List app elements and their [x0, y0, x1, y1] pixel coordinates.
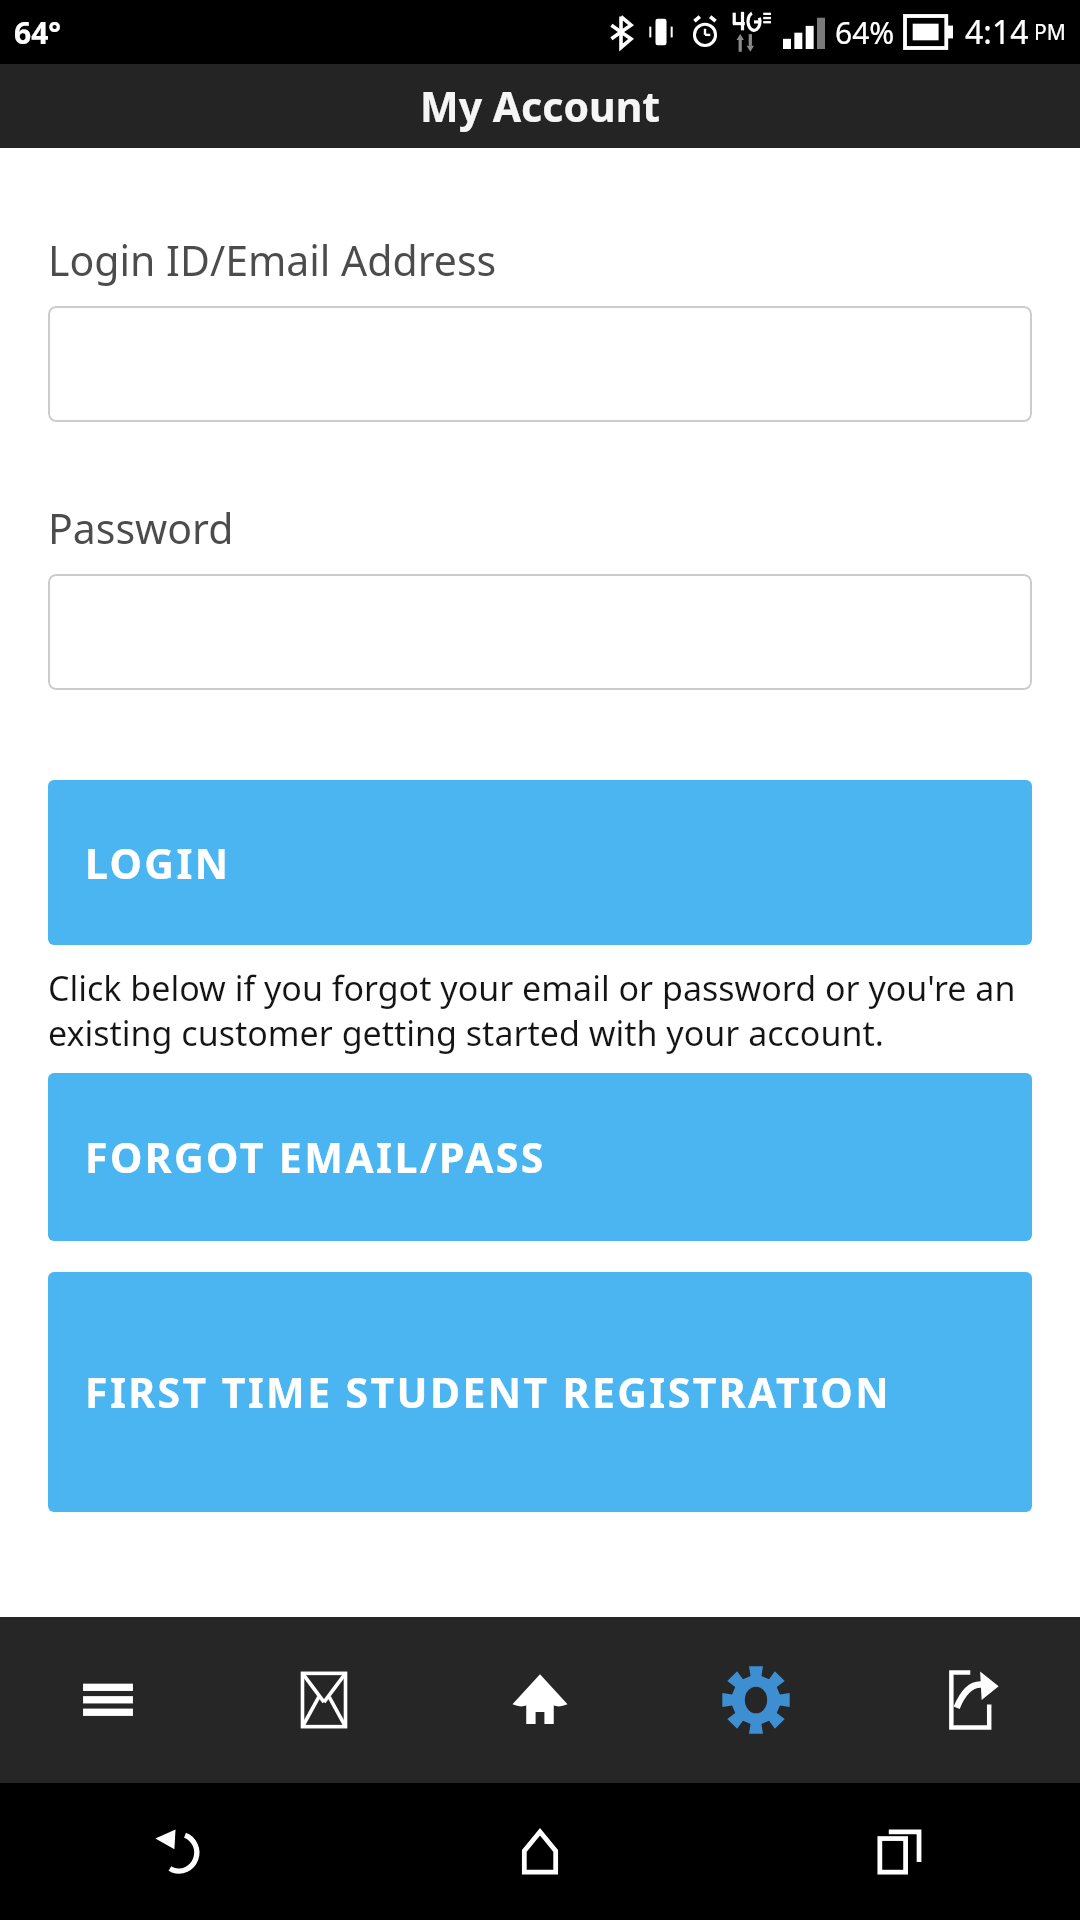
button[interactable]: [48, 574, 1032, 690]
button[interactable]: Home: [432, 1617, 648, 1783]
button[interactable]: FORGOT EMAIL/PASS: [48, 1073, 1032, 1241]
button[interactable]: [48, 306, 1032, 422]
button[interactable]: Settings: [648, 1617, 864, 1783]
button[interactable]: LOGIN: [48, 780, 1032, 945]
button[interactable]: Messages: [216, 1617, 432, 1783]
staticText: Password: [48, 500, 1032, 556]
staticText: FORGOT EMAIL/PASS: [85, 1129, 546, 1185]
staticText: Click below if you forgot your email or …: [48, 965, 1032, 1055]
button[interactable]: Recents: [720, 1783, 1080, 1920]
staticText: PM: [1034, 18, 1066, 47]
button[interactable]: Home: [360, 1783, 720, 1920]
button[interactable]: Share: [864, 1617, 1080, 1783]
staticText: LOGIN: [85, 835, 231, 891]
staticText: Login ID/Email Address: [48, 232, 1032, 288]
staticText: My Account: [420, 78, 661, 134]
button[interactable]: Menu: [0, 1617, 216, 1783]
staticText: FIRST TIME STUDENT REGISTRATION: [85, 1364, 891, 1420]
staticText: 64%: [835, 12, 895, 53]
staticText: 64°: [14, 12, 62, 53]
staticText: 4:14: [965, 10, 1029, 54]
button[interactable]: Back: [0, 1783, 360, 1920]
button[interactable]: FIRST TIME STUDENT REGISTRATION: [48, 1272, 1032, 1512]
